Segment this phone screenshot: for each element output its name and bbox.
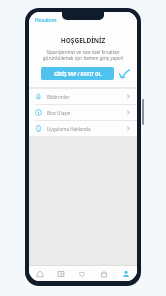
button[interactable]: Cart [93,266,115,281]
staticText: Bize Ulaşın [47,110,71,116]
button[interactable]: GİRİŞ YAP / KAYIT OL [41,67,114,80]
staticText: Bildirimler [47,94,70,100]
staticText: Siparişlerinizi ve size özel fırsatları … [36,49,130,61]
button[interactable]: Bize Ulaşın [29,105,137,120]
staticText: Hesabım [35,17,57,24]
staticText: HOŞGELDİNİZ [29,36,137,45]
staticText: GİRİŞ YAP / KAYIT OL [54,71,102,77]
button[interactable]: Home [29,266,50,281]
button[interactable]: Uygulama Hakkında [29,121,137,136]
button[interactable]: Categories [50,266,71,281]
button[interactable]: Favorites [71,266,93,281]
button[interactable]: Bildirimler [29,89,137,104]
staticText: Uygulama Hakkında [47,126,91,132]
button[interactable]: Account [115,266,137,281]
